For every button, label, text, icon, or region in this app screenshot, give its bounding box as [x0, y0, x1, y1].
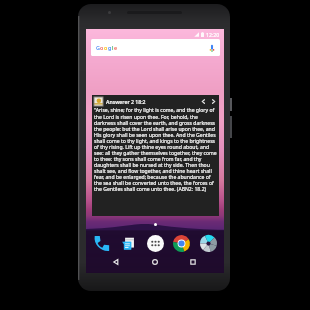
staticText: o	[104, 44, 108, 51]
button[interactable]: G	[91, 39, 220, 56]
staticText: "Arise, shine; for thy light is come, an…	[94, 107, 217, 192]
staticText: G	[96, 44, 100, 51]
staticText: e	[114, 44, 118, 51]
staticText: Answerer 2 18:2	[106, 98, 146, 105]
button[interactable]: Messages	[120, 235, 137, 252]
staticText: l	[112, 44, 114, 51]
button[interactable]: Recents	[186, 255, 200, 269]
button[interactable]: Chrome	[173, 235, 190, 252]
staticText: g	[108, 44, 112, 51]
button[interactable]: Camera	[200, 235, 217, 252]
button[interactable]: Previous	[198, 96, 208, 106]
button[interactable]: Answerer 2 18:2	[92, 95, 219, 216]
other: Voice search	[208, 44, 216, 52]
button[interactable]: Next	[208, 96, 218, 106]
button[interactable]: Home	[148, 255, 162, 269]
button[interactable]: Phone	[93, 235, 110, 252]
button[interactable]: Back	[109, 255, 123, 269]
button[interactable]: All apps	[147, 235, 164, 252]
staticText: 12:20	[206, 31, 220, 38]
staticText: o	[100, 44, 104, 51]
